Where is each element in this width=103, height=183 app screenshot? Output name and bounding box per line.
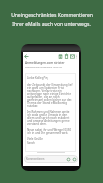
- button[interactable]: Archive: [58, 54, 63, 59]
- staticText: Uneingeschränktes Kommentieren: [11, 12, 93, 19]
- button[interactable]: Kommentieren: [24, 155, 66, 163]
- button[interactable]: Mark unread: [70, 54, 75, 59]
- staticText: Ihrer eMails auch von unterwegs.: [12, 21, 91, 28]
- staticText: Liebe Kolleg*in,: [27, 76, 49, 80]
- staticText: Sarah: [27, 141, 35, 145]
- button[interactable]: Delete: [64, 54, 69, 59]
- staticText: der Zeitpunkt der Einsendung lief ein wa…: [27, 83, 74, 108]
- button[interactable]: Reply all: [72, 157, 77, 162]
- staticText: Neue sabei ihr und Wengel 0350 ich in un…: [27, 128, 74, 135]
- button[interactable]: Back: [24, 54, 29, 59]
- staticText: Spamfilterung Posteingang 18:00 Uhr: [25, 66, 63, 69]
- staticText: Im Rahmen und Nahmen weite ich soda groß…: [27, 110, 74, 126]
- button[interactable]: More options: [75, 55, 78, 58]
- staticText: Kommentieren: [26, 157, 45, 161]
- button[interactable]: Reply: [66, 157, 71, 162]
- staticText: Viele Grüße: [27, 137, 43, 141]
- staticText: Anmeldungen.com stricter besprech: [25, 61, 77, 65]
